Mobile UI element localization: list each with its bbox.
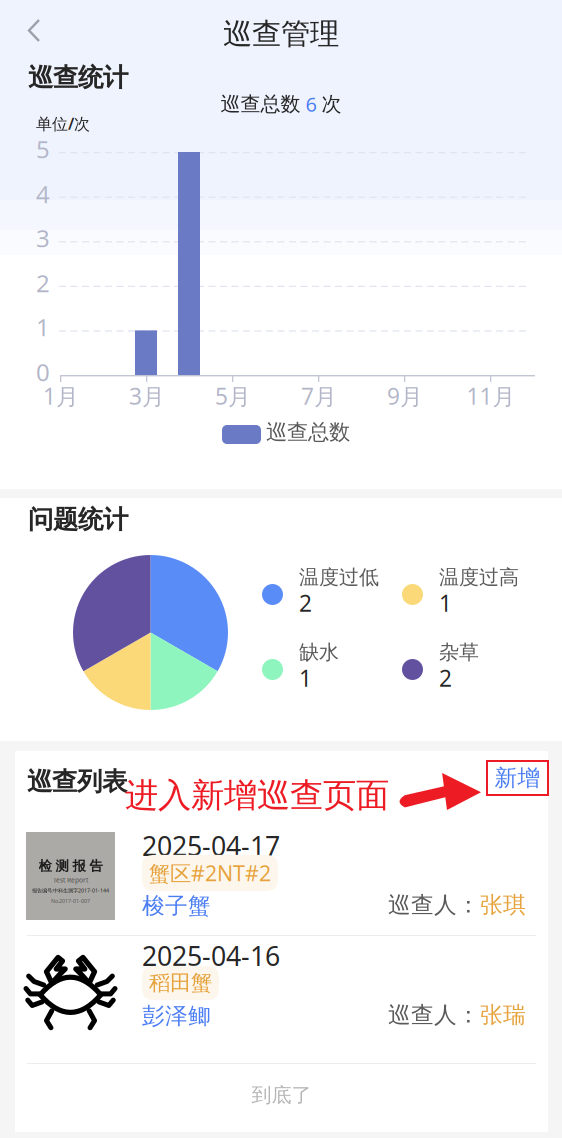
staticText: 缺水 <box>299 640 339 665</box>
staticText: 温度过高 <box>439 565 519 590</box>
staticText: 1 <box>439 588 452 618</box>
staticText: 巡查统计 <box>28 62 128 93</box>
staticText: 张瑞 <box>480 1001 526 1029</box>
staticText: 巡查总数 <box>220 92 300 116</box>
staticText: 检 测 报 告 <box>38 858 102 874</box>
staticText: 巡查总数 <box>266 419 350 445</box>
staticText: 1 <box>299 663 312 693</box>
staticText: 2 <box>36 267 50 299</box>
staticText: 巡查人： <box>388 891 480 919</box>
staticText: No.2017-01-007 <box>51 897 90 905</box>
staticText: 9月 <box>387 381 423 411</box>
button[interactable]: 新增 <box>15 751 548 795</box>
staticText: 0 <box>36 356 50 388</box>
staticText: 问题统计 <box>28 504 128 535</box>
staticText: 2025-04-17 <box>142 828 280 863</box>
staticText: 温度过低 <box>299 565 379 590</box>
staticText: 1月 <box>43 381 79 411</box>
button[interactable]: Back <box>0 0 59 50</box>
staticText: 3 <box>36 222 50 254</box>
button[interactable]: 检 测 报 告 <box>15 830 548 932</box>
staticText: 次 <box>321 92 341 116</box>
staticText: 11月 <box>466 381 515 411</box>
staticText: 4 <box>36 178 50 210</box>
staticText: 单位/次 <box>36 113 90 134</box>
staticText: 7月 <box>301 381 337 411</box>
staticText: 到底了 <box>251 1083 311 1107</box>
staticText: Test Report <box>53 876 88 884</box>
staticText: 6 <box>300 91 321 117</box>
staticText: 2 <box>299 588 312 618</box>
staticText: 2025-04-16 <box>142 938 280 973</box>
staticText: 5月 <box>215 381 251 411</box>
staticText: 彭泽鲫 <box>142 1002 211 1030</box>
staticText: 3月 <box>129 381 165 411</box>
staticText: 巡查管理 <box>223 16 339 52</box>
staticText: 新增 <box>494 764 540 792</box>
staticText: 巡查列表 <box>27 766 127 797</box>
staticText: 杂草 <box>439 640 479 665</box>
staticText: 稻田蟹 <box>149 970 212 996</box>
staticText: 进入新增巡查页面 <box>125 775 389 816</box>
staticText: 2 <box>439 663 452 693</box>
staticText: 蟹区#2NT#2 <box>149 859 271 887</box>
staticText: 1 <box>36 311 50 343</box>
staticText: 5 <box>36 133 50 165</box>
staticText: 报告编号:中科生测字2017-01-144 <box>32 887 109 894</box>
staticText: 梭子蟹 <box>142 892 211 920</box>
staticText: 巡查人： <box>388 1001 480 1029</box>
staticText: 张琪 <box>480 891 526 919</box>
button[interactable]: 2025-04-16 <box>15 940 548 1042</box>
